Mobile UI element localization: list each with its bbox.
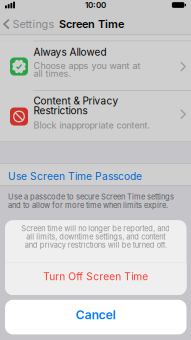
button[interactable]: Turn Off Screen Time	[5, 263, 186, 295]
staticText: Cancel	[76, 308, 116, 322]
button[interactable]: Content & Privacy	[0, 91, 191, 141]
staticText: Turn Off Screen Time	[43, 271, 148, 283]
staticText: Screen time will no longer be reported, …	[21, 224, 170, 233]
button[interactable]: Use Screen Time Passcode	[0, 164, 191, 185]
button[interactable]: Back to Settings	[0, 18, 54, 30]
staticText: Use Screen Time Passcode	[8, 170, 142, 182]
staticText: Content & Privacy	[33, 95, 118, 107]
staticText: Block inappropriate content.	[33, 120, 150, 130]
staticText: all times.	[33, 68, 71, 79]
button[interactable]: Always Allowed	[0, 41, 191, 90]
staticText: Restrictions	[33, 105, 87, 116]
staticText: and privacy restrictions will be turned …	[25, 241, 167, 249]
staticText: Use a passcode to secure Screen Time set…	[8, 192, 174, 201]
staticText: 10:00	[85, 0, 106, 10]
staticText: Choose apps you want at	[33, 60, 140, 71]
button[interactable]: Cancel	[5, 300, 186, 334]
staticText: Screen Time	[59, 18, 124, 30]
staticText: Always Allowed	[33, 46, 106, 58]
staticText: Settings	[12, 18, 54, 30]
staticText: and to allow for more time when limits e…	[8, 201, 168, 210]
staticText: all limits, downtime settings, and conte…	[26, 232, 165, 241]
